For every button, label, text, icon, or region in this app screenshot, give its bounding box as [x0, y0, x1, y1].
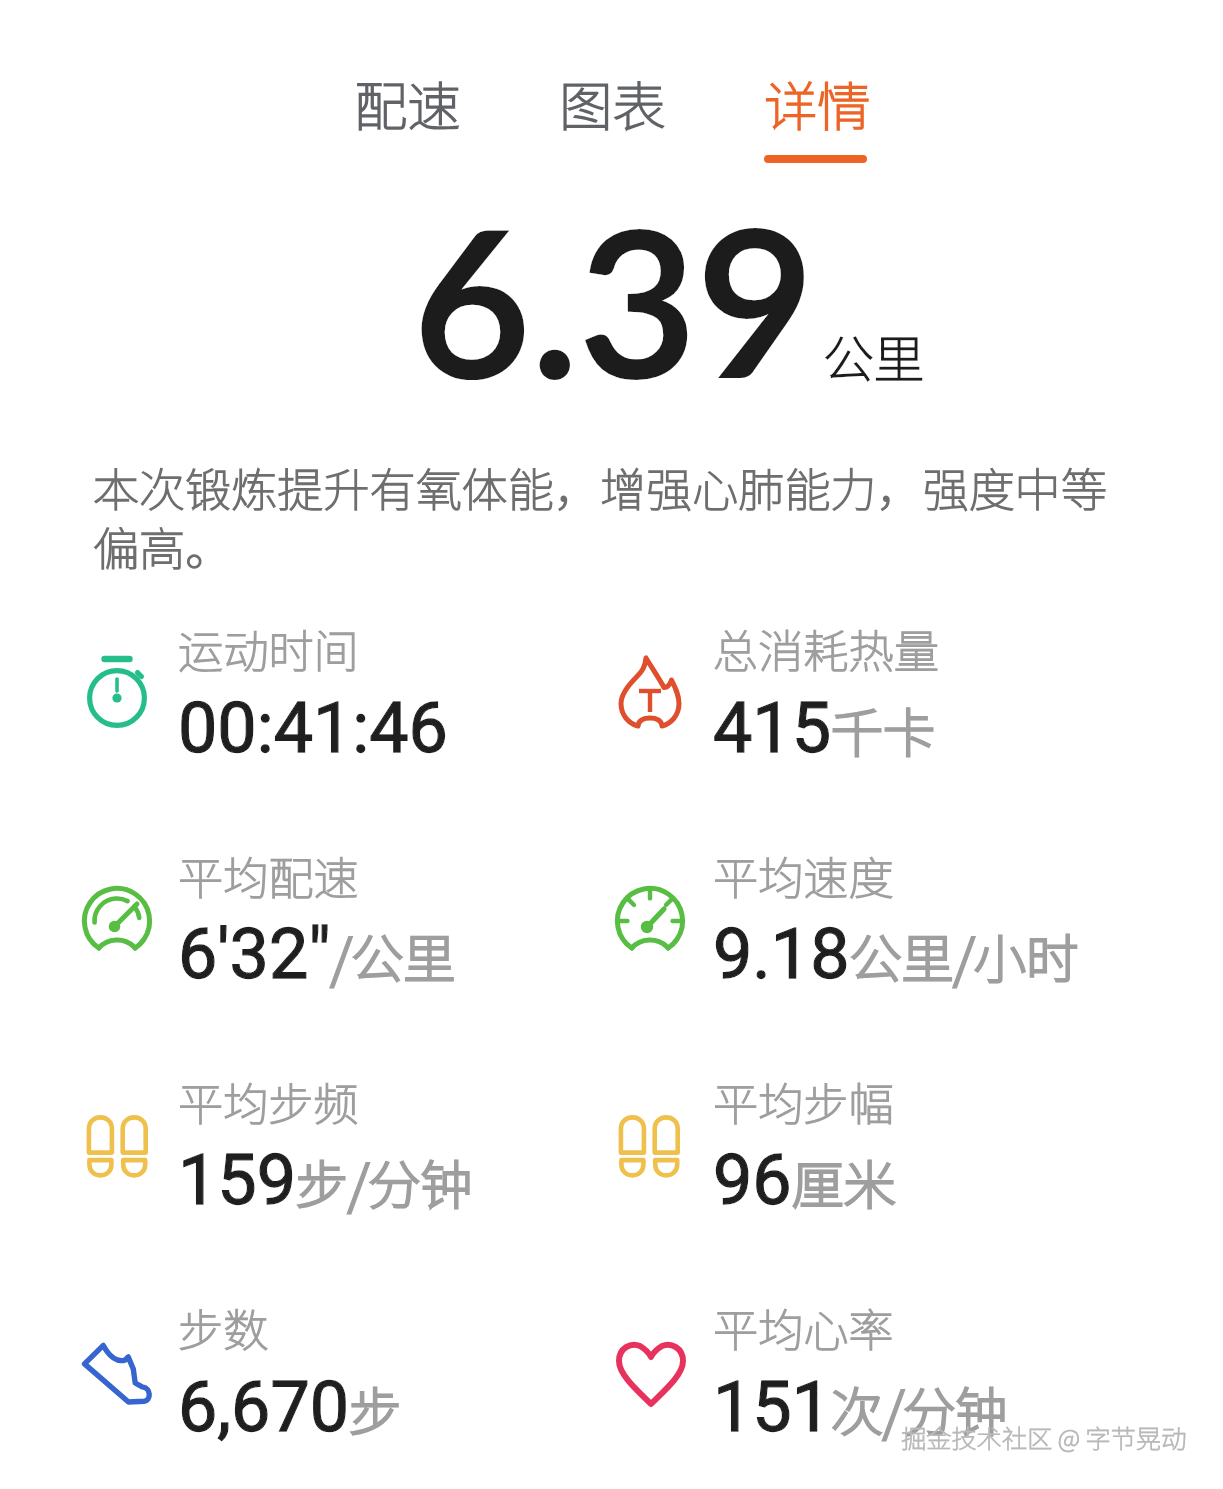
staticText: 9.18公里/小时: [713, 913, 1079, 995]
staticText: 415千卡: [713, 687, 936, 769]
staticText: 00:41:46: [178, 687, 448, 769]
staticText: 96厘米: [713, 1139, 896, 1221]
staticText: 00:41:46: [178, 687, 448, 769]
staticText: 6.39: [413, 177, 815, 421]
button[interactable]: 图表: [522, 34, 702, 170]
other: Average pace: [72, 876, 162, 966]
staticText: 公里: [823, 319, 925, 393]
staticText: 415千卡: [713, 687, 936, 769]
other: Average speed: [605, 876, 695, 966]
staticText: 平均步频: [178, 1069, 359, 1134]
staticText: 平均心率: [713, 1295, 894, 1360]
staticText: 6'32"/公里: [178, 913, 456, 995]
staticText: 总消耗热量: [713, 616, 939, 681]
staticText: 配速: [354, 64, 461, 141]
staticText: 6'32"/公里: [178, 913, 456, 995]
staticText: 平均步幅: [713, 1069, 894, 1134]
staticText: 151次/分钟: [713, 1366, 1008, 1448]
button[interactable]: 详情: [727, 34, 907, 170]
staticText: 本次锻炼提升有氧体能，增强心肺能力，强度中等偏高。: [93, 454, 1128, 579]
staticText: 图表: [559, 64, 666, 141]
staticText: 159步/分钟: [178, 1139, 473, 1221]
other: Average stride: [604, 1101, 694, 1191]
other: Calories: [605, 647, 695, 737]
staticText: 步数: [178, 1295, 269, 1360]
staticText: 平均配速: [178, 843, 359, 908]
other: Average heart rate: [606, 1329, 696, 1419]
staticText: 运动时间: [178, 616, 359, 681]
staticText: 6,670步: [178, 1366, 402, 1448]
staticText: 6,670步: [178, 1366, 402, 1448]
staticText: 9.18公里/小时: [713, 913, 1079, 995]
other: Duration: [72, 653, 162, 743]
other: Average cadence: [72, 1101, 162, 1191]
staticText: 6.39: [413, 177, 815, 421]
staticText: 平均速度: [713, 843, 894, 908]
staticText: 159步/分钟: [178, 1139, 473, 1221]
staticText: 掘金技术社区 @ 字节晃动: [901, 1419, 1187, 1455]
button[interactable]: 配速: [317, 34, 497, 170]
staticText: 151次/分钟: [713, 1366, 1008, 1448]
staticText: 96厘米: [713, 1139, 896, 1221]
staticText: 详情: [764, 64, 871, 141]
other: Steps: [71, 1329, 161, 1419]
